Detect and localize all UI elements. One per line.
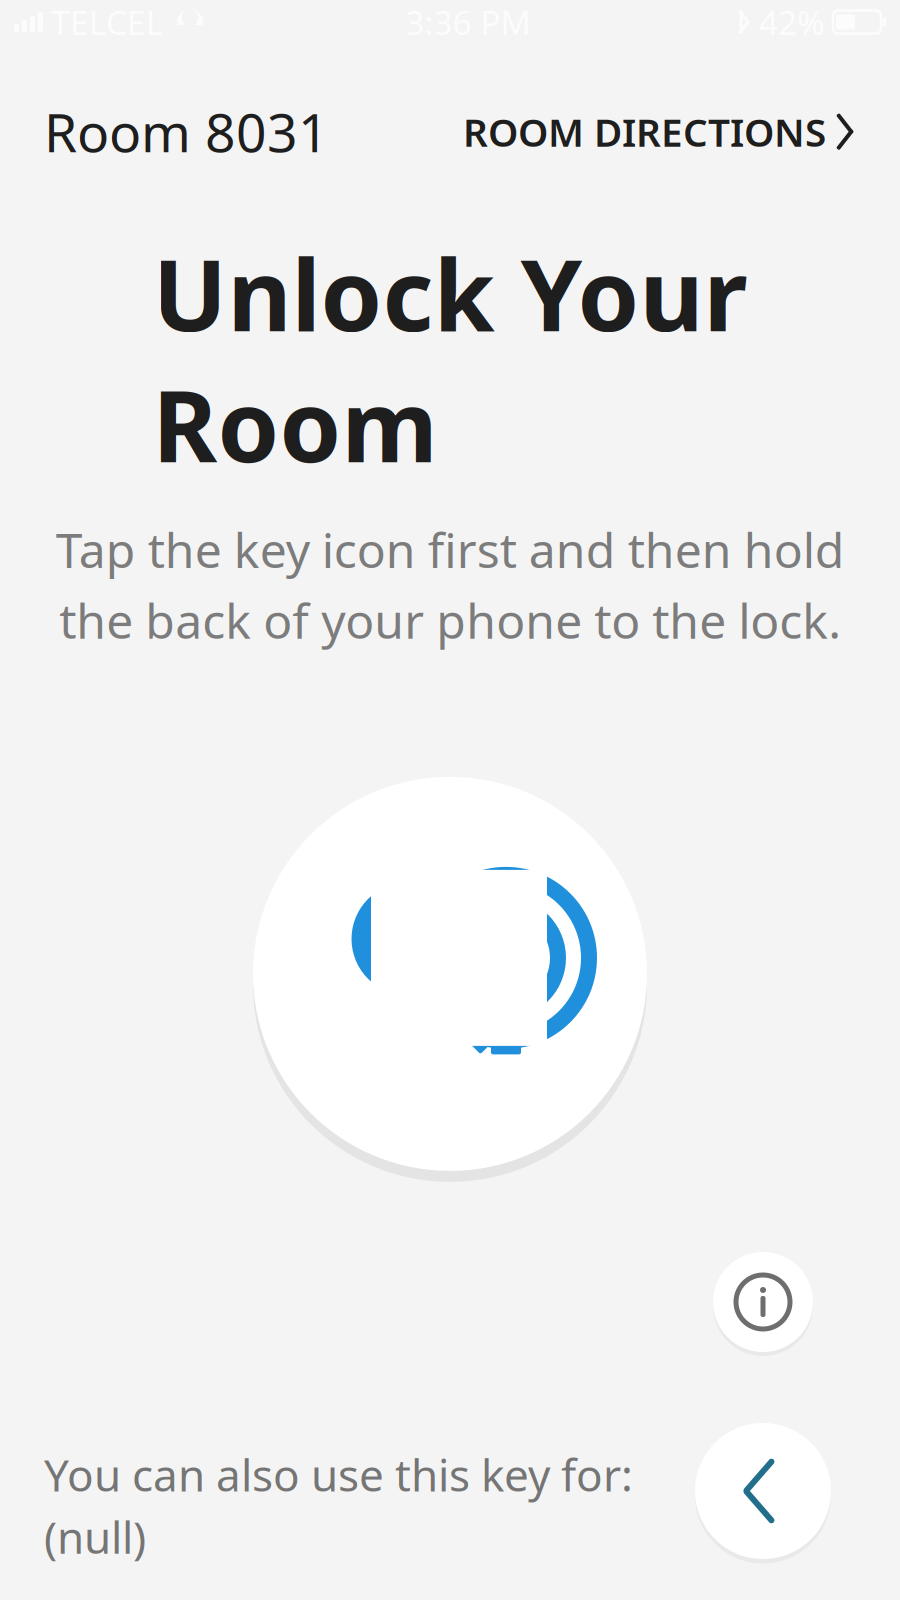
- staticText: (null): [44, 1508, 146, 1566]
- staticText: Tap the key icon first and then hold the…: [55, 517, 844, 652]
- button[interactable]: Unlock room with key: [240, 764, 660, 1184]
- button[interactable]: Back: [688, 1416, 838, 1566]
- button[interactable]: ROOM DIRECTIONS: [449, 96, 856, 167]
- staticText: ROOM DIRECTIONS: [463, 106, 826, 157]
- staticText: Unlock Your Room: [152, 227, 747, 489]
- staticText: Room 8031: [44, 96, 329, 167]
- staticText: You can also use this key for:: [44, 1445, 633, 1503]
- button[interactable]: Information: [707, 1246, 819, 1358]
